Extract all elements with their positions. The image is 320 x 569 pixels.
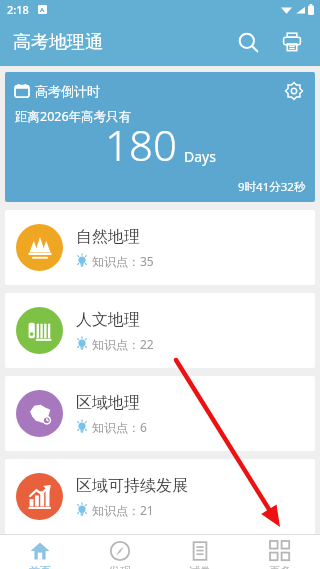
staticText: 自然地理 [76, 227, 140, 247]
button[interactable]: 首页 [0, 535, 80, 569]
staticText: 区域可持续发展 [76, 476, 188, 496]
staticText: 180 [105, 116, 177, 173]
staticText: 知识点：22 [92, 336, 154, 352]
staticText: 2:18 [7, 2, 29, 17]
staticText: 知识点：6 [92, 419, 147, 435]
button[interactable]: 自然地理 [5, 210, 315, 285]
staticText: 发现 [109, 564, 131, 569]
staticText: 知识点：35 [92, 253, 154, 269]
staticText: 知识点：21 [92, 502, 154, 518]
staticText: 首页 [29, 564, 51, 569]
button[interactable]: 区域可持续发展 [5, 459, 315, 534]
button[interactable]: Search [226, 20, 270, 64]
staticText: 试卷 [189, 564, 211, 569]
button[interactable]: 试卷 [160, 535, 240, 569]
button[interactable]: 高考倒计时 [5, 72, 315, 202]
button[interactable]: Print [270, 20, 314, 64]
staticText: A [40, 6, 45, 14]
button[interactable]: 更多 [240, 535, 320, 569]
staticText: Days [184, 147, 216, 166]
button[interactable]: Settings [279, 76, 309, 106]
staticText: 人文地理 [76, 310, 140, 330]
button[interactable]: 人文地理 [5, 293, 315, 368]
staticText: 距离2026年高考只有 [15, 108, 132, 125]
staticText: 高考地理通 [13, 31, 103, 54]
button[interactable]: 区域地理 [5, 376, 315, 451]
staticText: 9时41分32秒 [238, 179, 306, 195]
button[interactable]: 发现 [80, 535, 160, 569]
staticText: 更多 [269, 564, 291, 569]
staticText: 区域地理 [76, 393, 140, 413]
staticText: 高考倒计时 [35, 83, 100, 99]
